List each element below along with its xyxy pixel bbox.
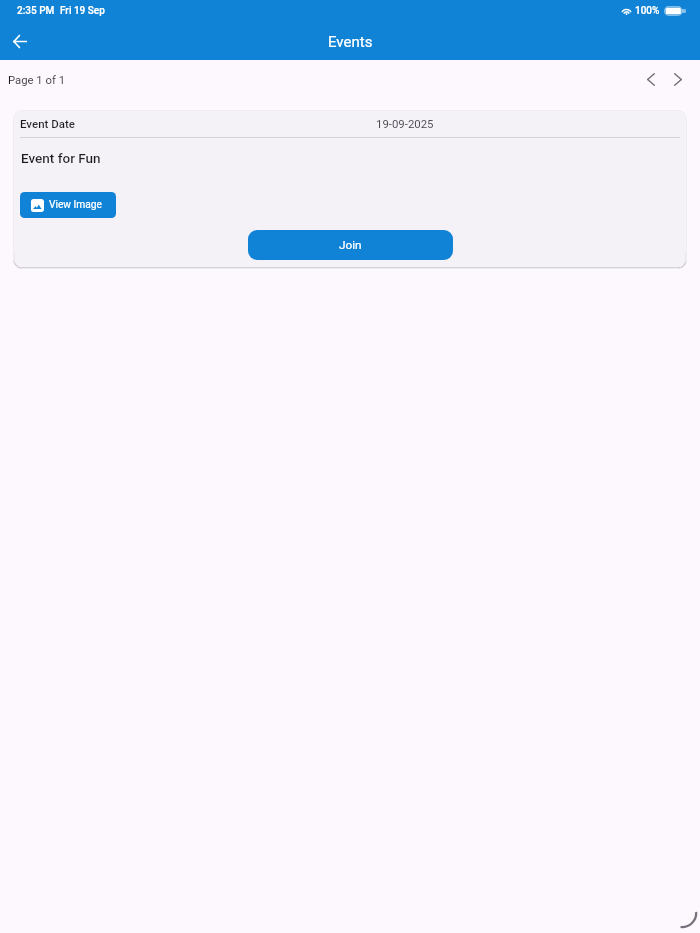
staticText: 19-09-2025 bbox=[376, 117, 434, 130]
staticText: Fri 19 Sep bbox=[60, 5, 105, 17]
staticText: Page 1 of 1 bbox=[8, 74, 66, 87]
staticText: 2:35 PM bbox=[17, 5, 55, 17]
staticText: Event for Fun bbox=[21, 150, 101, 166]
staticText: Events bbox=[328, 33, 373, 51]
button[interactable]: View Image bbox=[20, 192, 116, 218]
staticText: Join bbox=[339, 238, 362, 252]
button[interactable]: Previous page bbox=[638, 66, 664, 92]
button[interactable]: Back bbox=[4, 25, 36, 57]
button[interactable]: Join bbox=[248, 230, 453, 260]
button[interactable]: Next page bbox=[665, 66, 691, 92]
staticText: Event Date bbox=[20, 117, 75, 130]
staticText: 100% bbox=[635, 5, 660, 17]
staticText: View Image bbox=[49, 199, 102, 211]
